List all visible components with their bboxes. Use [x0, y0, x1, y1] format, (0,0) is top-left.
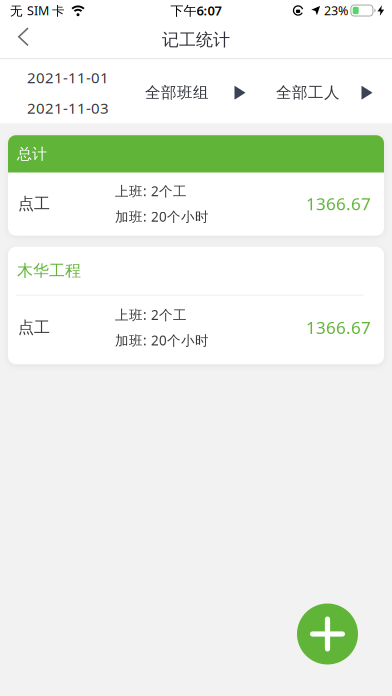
button[interactable]: 添加 — [297, 603, 358, 664]
staticText: 下午6:07 — [170, 2, 221, 19]
staticText: 1366.67 — [306, 316, 371, 339]
staticText: 总计 — [17, 144, 47, 163]
staticText: 全部班组 — [145, 83, 209, 102]
button[interactable]: 2021-11-01 — [0, 59, 145, 123]
staticText: 无 SIM 卡 — [10, 2, 65, 19]
staticText: 1366.67 — [306, 192, 371, 215]
staticText: 全部工人 — [276, 83, 340, 102]
staticText: 2021-11-03 — [27, 98, 109, 118]
staticText: 点工 — [18, 194, 50, 214]
staticText: 2021-11-01 — [27, 67, 109, 88]
staticText: 加班: 20个小时 — [115, 331, 209, 349]
button[interactable]: 全部工人 — [276, 59, 373, 123]
staticText: 记工统计 — [162, 29, 230, 50]
staticText: 点工 — [18, 317, 50, 338]
staticText: 上班: 2个工 — [115, 306, 187, 324]
button[interactable]: 全部班组 — [145, 59, 246, 123]
staticText: 木华工程 — [17, 261, 81, 281]
staticText: 加班: 20个小时 — [115, 207, 209, 226]
staticText: 上班: 2个工 — [115, 182, 187, 200]
button[interactable]: Back — [0, 21, 43, 58]
staticText: 23% — [324, 2, 348, 19]
